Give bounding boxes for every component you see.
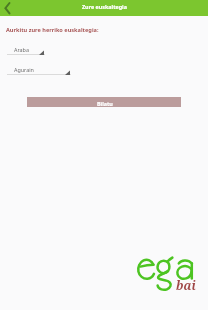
- staticText: Agurain: [14, 66, 34, 73]
- button[interactable]: Araba: [7, 44, 45, 56]
- button[interactable]: Back: [0, 0, 16, 16]
- staticText: bai: [176, 277, 196, 293]
- staticText: Bilatu: [97, 100, 113, 107]
- staticText: Aurkitu zure herriko euskaltegia:: [6, 26, 99, 34]
- staticText: Araba: [14, 46, 29, 53]
- button[interactable]: Bilatu: [27, 97, 181, 107]
- staticText: Zure euskaltegia: [82, 3, 127, 10]
- button[interactable]: Agurain: [7, 64, 71, 76]
